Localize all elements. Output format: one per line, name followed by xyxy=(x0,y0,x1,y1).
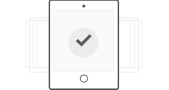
button[interactable]: Phone mockup carousel xyxy=(0,0,169,90)
